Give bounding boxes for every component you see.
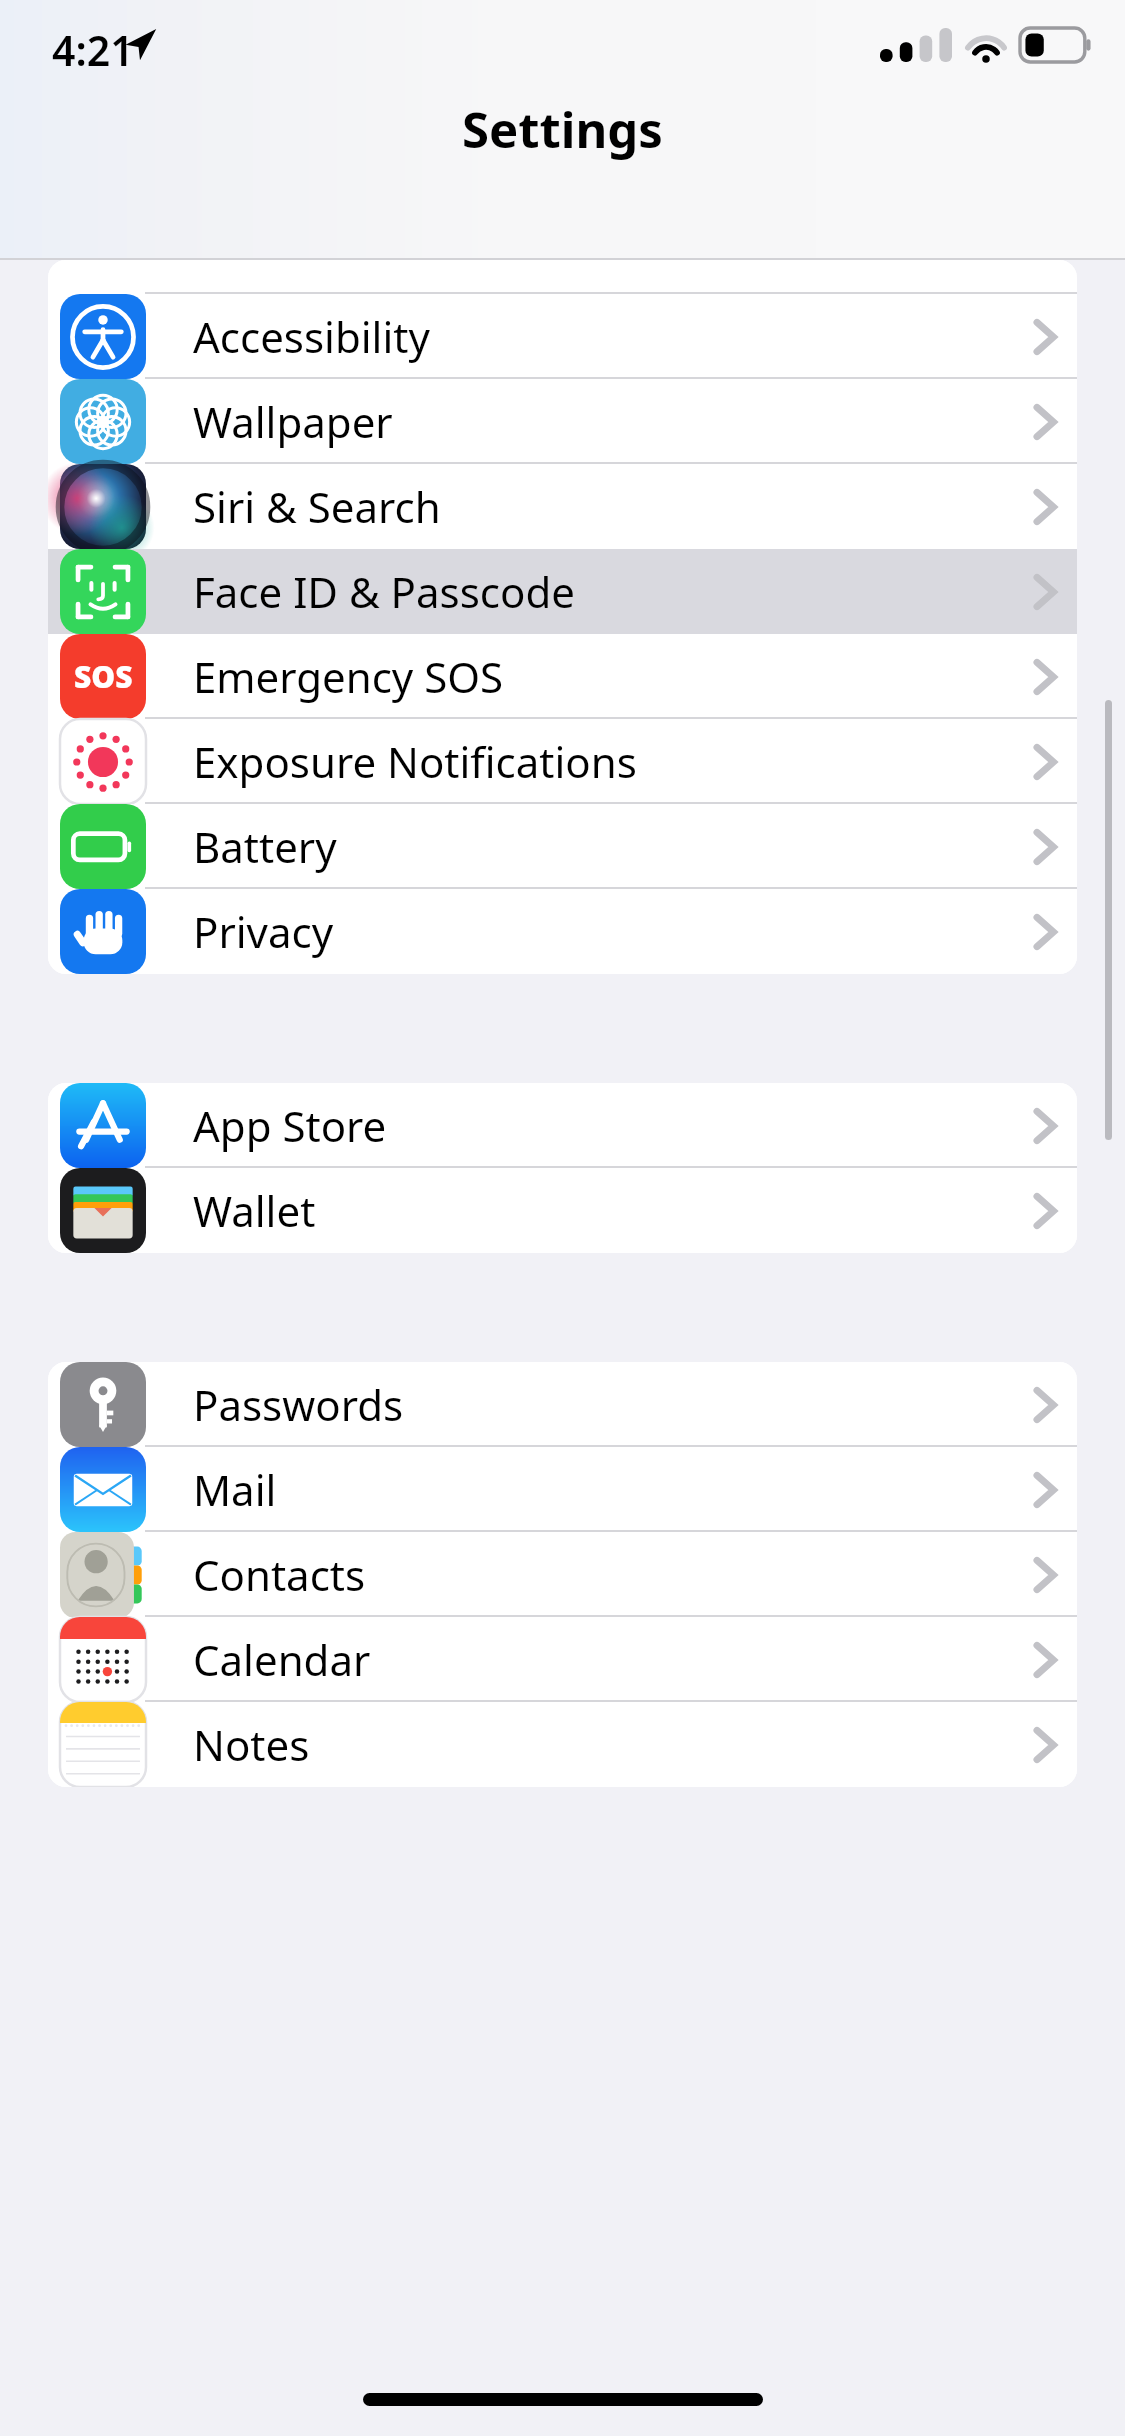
staticText: Wallpaper (193, 393, 393, 450)
staticText: App Store (193, 1097, 387, 1154)
button[interactable]: Siri & Search (48, 464, 1077, 549)
button[interactable]: SOS (48, 634, 1077, 719)
staticText: Mail (193, 1461, 277, 1518)
button[interactable]: Battery (48, 804, 1077, 889)
staticText: Battery (193, 818, 337, 875)
staticText: Exposure Notifications (193, 733, 637, 790)
staticText: Settings (0, 96, 1125, 163)
staticText: Siri & Search (193, 478, 441, 535)
staticText: Accessibility (193, 308, 430, 365)
staticText: Privacy (193, 903, 334, 960)
button[interactable]: Calendar (48, 1617, 1077, 1702)
staticText: Passwords (193, 1376, 404, 1433)
button[interactable]: App Store (48, 1083, 1077, 1168)
staticText: Wallet (193, 1182, 316, 1239)
button[interactable]: Face ID & Passcode (48, 549, 1077, 634)
button[interactable]: Accessibility (48, 294, 1077, 379)
staticText: Emergency SOS (193, 648, 504, 705)
staticText: Face ID & Passcode (193, 563, 575, 620)
staticText: Calendar (193, 1631, 371, 1688)
staticText: Contacts (193, 1546, 366, 1603)
button[interactable]: Mail (48, 1447, 1077, 1532)
button[interactable]: Wallet (48, 1168, 1077, 1253)
button[interactable]: Notes (48, 1702, 1077, 1787)
button[interactable]: Privacy (48, 889, 1077, 974)
button[interactable]: Contacts (48, 1532, 1077, 1617)
button[interactable]: Passwords (48, 1362, 1077, 1447)
staticText: Notes (193, 1716, 310, 1773)
staticText: 4:21 (52, 22, 134, 78)
staticText: SOS (74, 656, 133, 697)
button[interactable]: Wallpaper (48, 379, 1077, 464)
button[interactable]: Exposure Notifications (48, 719, 1077, 804)
